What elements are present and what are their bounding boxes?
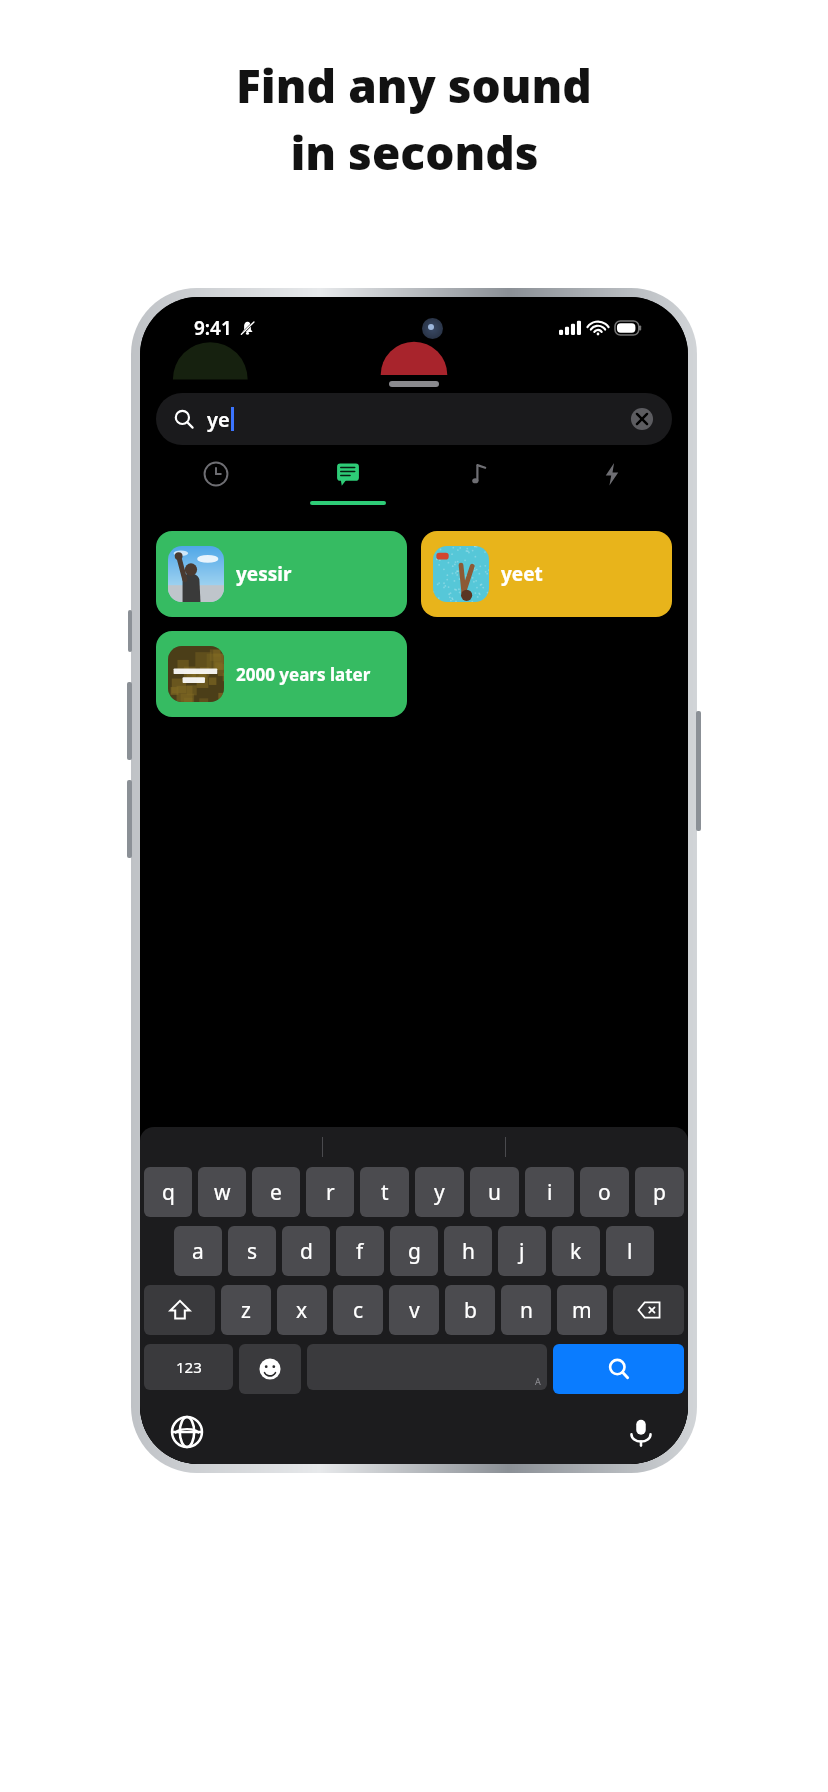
button[interactable]: f <box>336 1226 384 1276</box>
button[interactable]: yessir <box>156 531 407 617</box>
button[interactable]: Memes <box>282 453 414 511</box>
button[interactable]: 123 <box>144 1344 233 1390</box>
button[interactable]: j <box>498 1226 546 1276</box>
staticText: q <box>162 1178 175 1207</box>
button[interactable]: v <box>389 1285 439 1335</box>
staticText: 123 <box>176 1357 202 1377</box>
staticText: h <box>462 1237 475 1266</box>
button[interactable]: u <box>470 1167 519 1217</box>
button[interactable]: Voice input <box>624 1415 658 1449</box>
button[interactable]: d <box>282 1226 330 1276</box>
staticText: A <box>535 1375 541 1387</box>
button[interactable]: m <box>557 1285 607 1335</box>
button[interactable]: x <box>277 1285 327 1335</box>
staticText: s <box>247 1237 258 1266</box>
button[interactable]: w <box>198 1167 246 1217</box>
staticText: m <box>572 1296 592 1325</box>
staticText: ye <box>207 406 230 433</box>
staticText: yessir <box>236 561 292 587</box>
button[interactable]: Search <box>553 1344 684 1394</box>
button[interactable]: Search <box>156 393 672 445</box>
staticText: u <box>488 1178 501 1207</box>
button[interactable]: i <box>525 1167 574 1217</box>
staticText: 2000 years later <box>236 663 371 686</box>
button[interactable]: y <box>415 1167 464 1217</box>
staticText: 9:41 <box>194 315 232 341</box>
staticText: j <box>519 1237 525 1266</box>
button[interactable]: Change keyboard <box>170 1415 204 1449</box>
button[interactable]: e <box>252 1167 300 1217</box>
button[interactable]: s <box>228 1226 276 1276</box>
button[interactable]: Emoji <box>239 1344 301 1394</box>
staticText: y <box>434 1178 445 1207</box>
staticText: yeet <box>501 561 543 587</box>
button[interactable]: Shift <box>144 1285 215 1335</box>
button[interactable]: t <box>360 1167 409 1217</box>
button[interactable]: c <box>333 1285 383 1335</box>
staticText: p <box>653 1178 666 1207</box>
button[interactable]: Music <box>414 453 546 511</box>
button[interactable]: b <box>445 1285 495 1335</box>
staticText: r <box>326 1178 335 1207</box>
staticText: v <box>409 1296 420 1325</box>
button[interactable]: k <box>552 1226 600 1276</box>
staticText: x <box>296 1296 308 1325</box>
button[interactable]: l <box>606 1226 654 1276</box>
button[interactable]: h <box>444 1226 492 1276</box>
staticText: k <box>570 1237 582 1266</box>
staticText: in seconds <box>290 121 539 184</box>
staticText: t <box>381 1178 389 1207</box>
staticText: e <box>270 1178 282 1207</box>
button[interactable]: o <box>580 1167 629 1217</box>
staticText: w <box>214 1178 231 1207</box>
button[interactable]: a <box>174 1226 222 1276</box>
staticText: d <box>300 1237 313 1266</box>
staticText: i <box>547 1178 553 1207</box>
button[interactable]: g <box>390 1226 438 1276</box>
staticText: l <box>627 1237 633 1266</box>
staticText: z <box>241 1296 251 1325</box>
button[interactable]: Recents <box>150 453 282 511</box>
other: Search <box>174 409 194 429</box>
button[interactable]: z <box>221 1285 271 1335</box>
button[interactable]: Trending <box>546 453 678 511</box>
button[interactable]: yeet <box>421 531 672 617</box>
staticText: c <box>353 1296 364 1325</box>
staticText: Find any sound <box>236 54 592 117</box>
staticText: g <box>408 1237 421 1266</box>
staticText: f <box>356 1237 364 1266</box>
button[interactable]: p <box>635 1167 684 1217</box>
button[interactable]: n <box>501 1285 551 1335</box>
button[interactable]: Backspace <box>613 1285 684 1335</box>
button[interactable]: r <box>306 1167 354 1217</box>
staticText: b <box>464 1296 477 1325</box>
button[interactable]: Clear text <box>630 407 654 431</box>
button[interactable]: 2000 years later <box>156 631 407 717</box>
staticText: o <box>598 1178 611 1207</box>
staticText: n <box>520 1296 533 1325</box>
staticText: a <box>192 1237 204 1266</box>
button[interactable]: q <box>144 1167 192 1217</box>
